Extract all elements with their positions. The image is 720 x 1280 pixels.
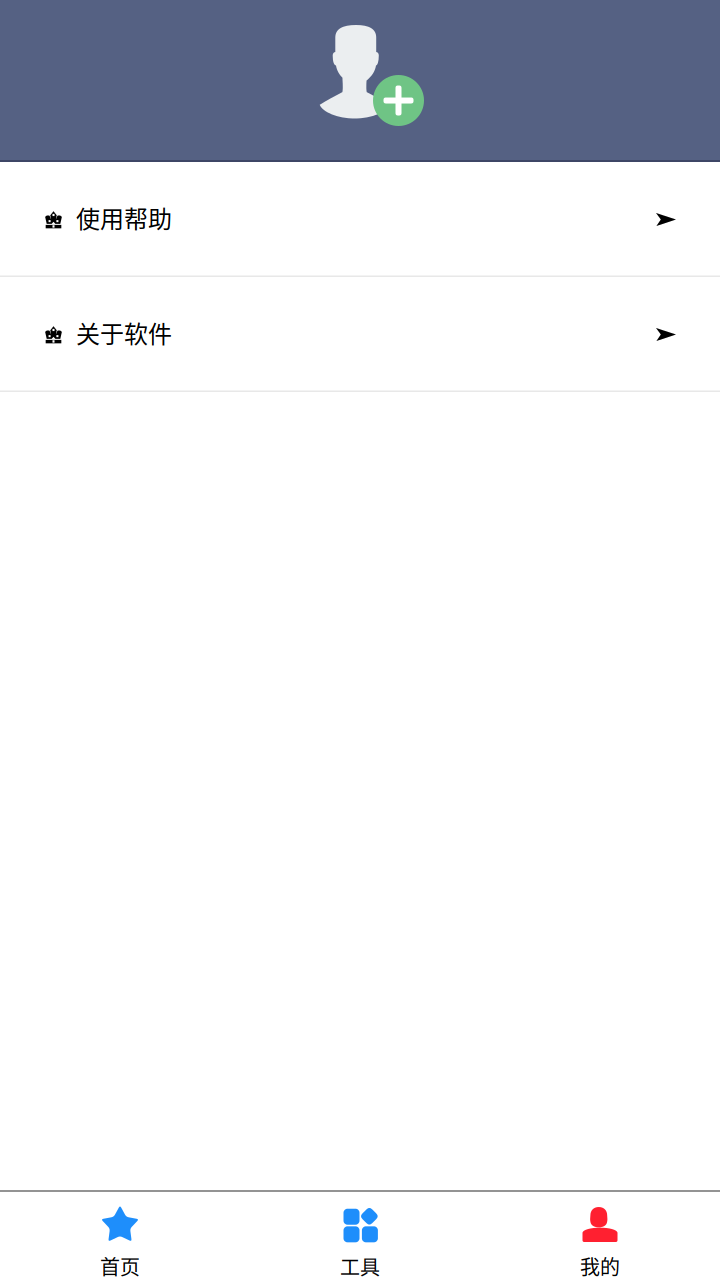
button[interactable]: 工具	[240, 1187, 480, 1280]
staticText: 使用帮助	[76, 200, 172, 235]
button[interactable]: 使用帮助	[0, 162, 720, 277]
button[interactable]: 关于软件	[0, 277, 720, 392]
button[interactable]: 我的	[480, 1187, 720, 1280]
staticText: 关于软件	[76, 315, 172, 350]
button[interactable]: 添加头像	[320, 24, 424, 126]
staticText: 我的	[580, 1251, 620, 1280]
button[interactable]: 首页	[0, 1187, 240, 1280]
staticText: 工具	[340, 1251, 380, 1280]
staticText: 首页	[100, 1251, 140, 1280]
